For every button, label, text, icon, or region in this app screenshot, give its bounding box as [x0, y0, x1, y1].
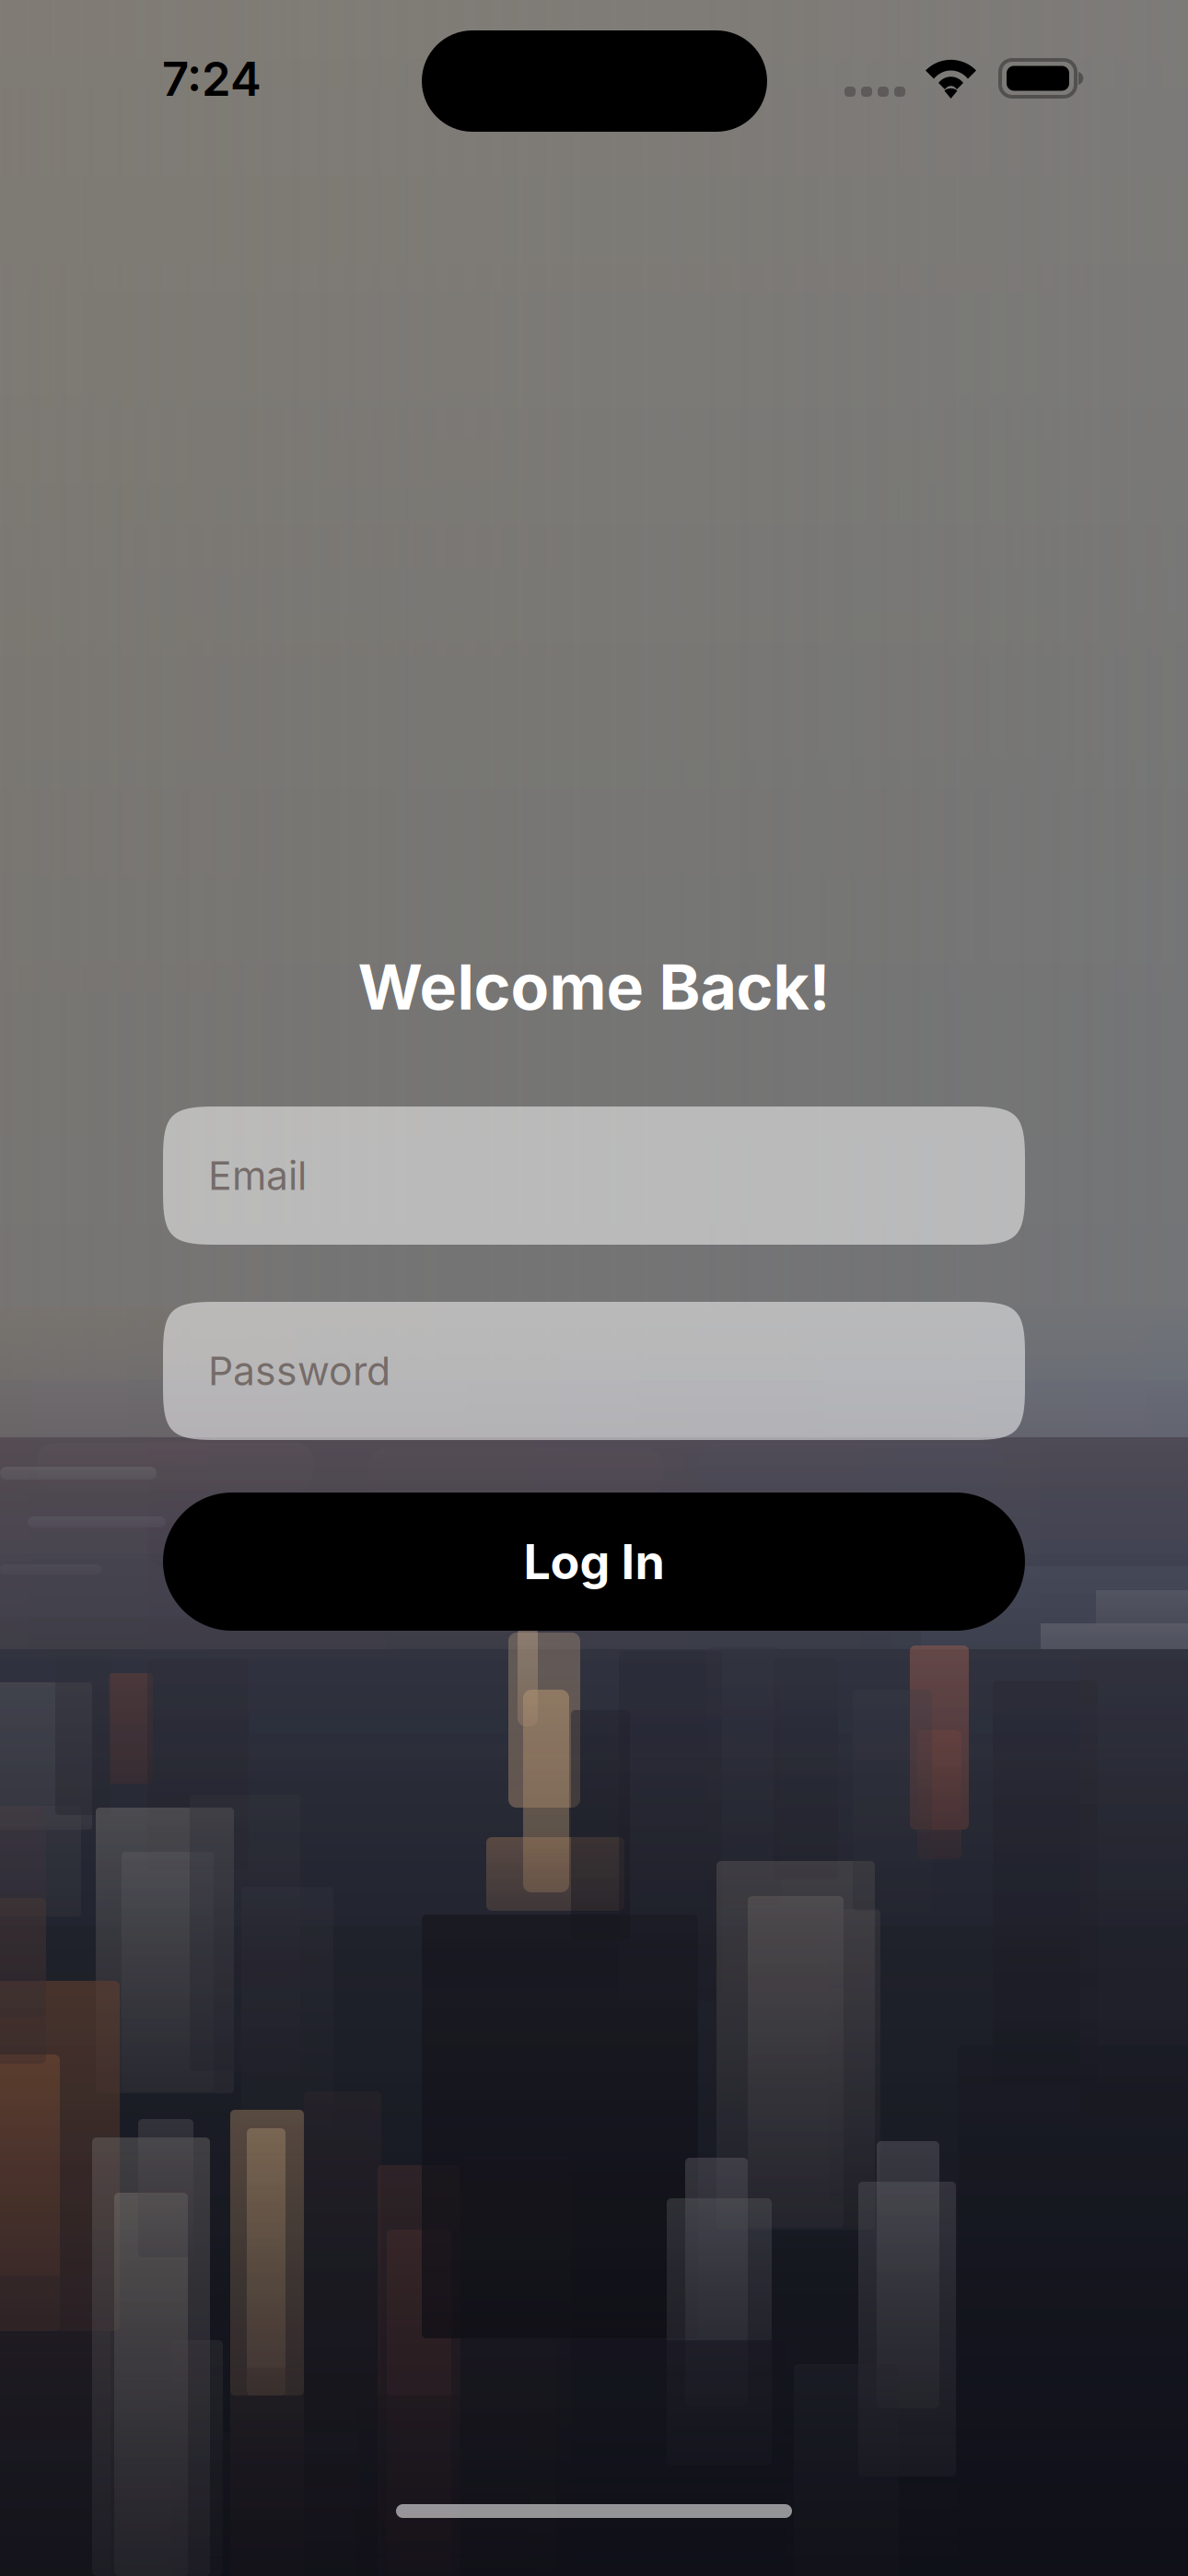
button[interactable]: Password — [163, 1302, 1025, 1440]
staticText: Password — [208, 1347, 390, 1395]
staticText: Log In — [524, 1533, 664, 1591]
staticText: Welcome Back! — [358, 949, 830, 1025]
staticText: Email — [208, 1152, 307, 1199]
button[interactable]: Log In — [163, 1493, 1025, 1631]
staticText: 7:24 — [162, 51, 262, 107]
button[interactable]: Email — [163, 1107, 1025, 1245]
